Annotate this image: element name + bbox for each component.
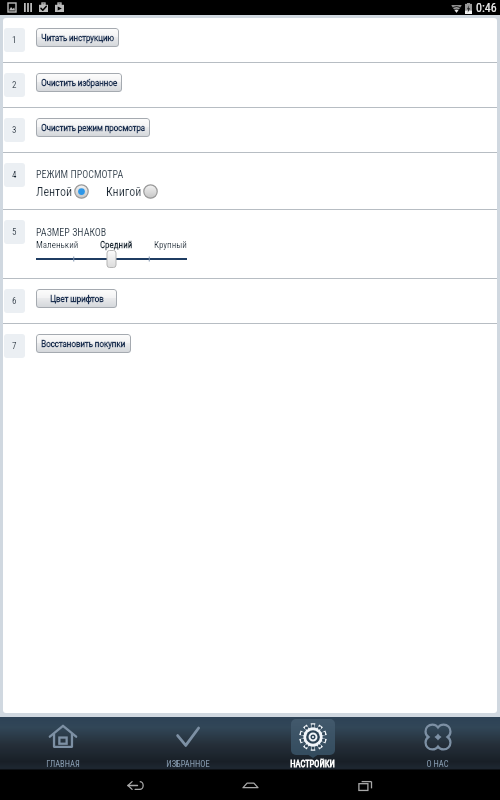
staticText: 6	[12, 296, 17, 307]
staticText: 3	[12, 125, 17, 136]
staticText: 7	[12, 341, 17, 352]
staticText: Цвет шрифтов	[50, 293, 104, 304]
staticText: Маленький	[36, 240, 79, 251]
staticText: Лентой	[36, 185, 73, 199]
staticText: 0:46	[476, 1, 497, 15]
button[interactable]: О НАС	[375, 717, 500, 770]
staticText: Очистить избранное	[41, 77, 117, 88]
staticText: ИЗБРАННОЕ	[166, 759, 210, 769]
staticText: Книгой	[106, 185, 142, 199]
staticText: НАСТРОЙКИ	[290, 759, 335, 769]
button[interactable]: Восстановить покупки	[36, 334, 131, 353]
staticText: Читать инструкцию	[41, 32, 114, 43]
button[interactable]: Лентой	[36, 184, 89, 199]
staticText: 1	[12, 35, 17, 46]
button[interactable]: Home	[220, 770, 280, 800]
staticText: О НАС	[426, 759, 449, 769]
staticText: Восстановить покупки	[41, 338, 126, 349]
staticText: 2	[12, 80, 17, 91]
button[interactable]	[36, 250, 187, 268]
button[interactable]: Recent apps	[335, 770, 395, 800]
button[interactable]: Back	[105, 770, 165, 800]
staticText: ГЛАВНАЯ	[46, 759, 80, 769]
button[interactable]: Очистить режим просмотра	[36, 118, 150, 137]
staticText: РАЗМЕР ЗНАКОВ	[36, 227, 107, 239]
staticText: Очистить режим просмотра	[41, 122, 145, 133]
staticText: Крупный	[154, 240, 187, 251]
staticText: Средний	[100, 240, 133, 251]
staticText: РЕЖИМ ПРОСМОТРА	[36, 169, 124, 181]
button[interactable]: Очистить избранное	[36, 73, 122, 92]
button[interactable]: ГЛАВНАЯ	[0, 717, 125, 770]
button[interactable]: Читать инструкцию	[36, 28, 119, 47]
button[interactable]: Книгой	[106, 184, 158, 199]
button[interactable]: ИЗБРАННОЕ	[125, 717, 250, 770]
staticText: 4	[12, 170, 17, 181]
button[interactable]: НАСТРОЙКИ	[250, 717, 375, 770]
staticText: 5	[12, 227, 17, 238]
button[interactable]: Цвет шрифтов	[36, 289, 117, 308]
